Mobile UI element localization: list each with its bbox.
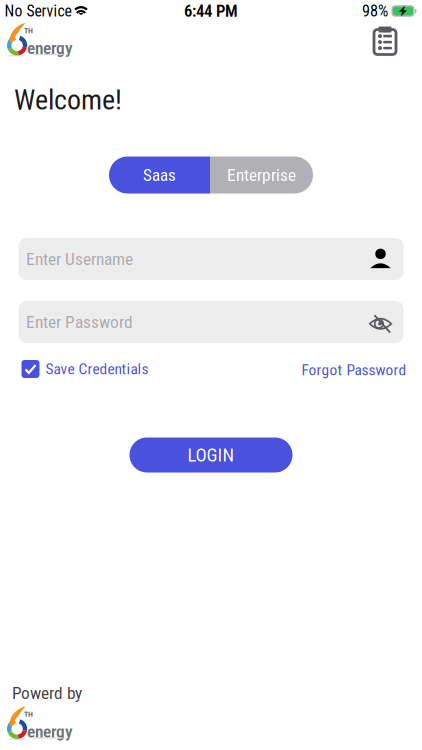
button[interactable]: Saas (109, 156, 210, 193)
button[interactable]: LOGIN (129, 437, 292, 472)
staticText: 98% (362, 1, 388, 21)
staticText: Save Credentials (45, 360, 148, 378)
staticText: Powerd by (12, 683, 82, 703)
button[interactable]: Save Credentials (21, 355, 148, 383)
staticText: TH (24, 709, 33, 719)
staticText: 6:44 PM (184, 1, 238, 21)
staticText: Enterprise (227, 165, 296, 185)
staticText: energy (27, 721, 73, 742)
staticText: LOGIN (187, 444, 234, 466)
staticText: Enter Username (26, 249, 133, 269)
staticText: Welcome! (14, 84, 122, 116)
button[interactable]: Enterprise (210, 156, 313, 193)
button[interactable]: Reports (363, 18, 407, 62)
staticText: Enter Password (26, 312, 133, 332)
staticText: Forgot Password (301, 361, 406, 379)
staticText: TH (24, 26, 33, 35)
button[interactable]: Forgot Password (301, 356, 406, 384)
staticText: energy (27, 38, 73, 58)
button[interactable]: Show password (368, 313, 392, 334)
staticText: Saas (143, 165, 176, 185)
staticText: No Service (4, 2, 71, 20)
